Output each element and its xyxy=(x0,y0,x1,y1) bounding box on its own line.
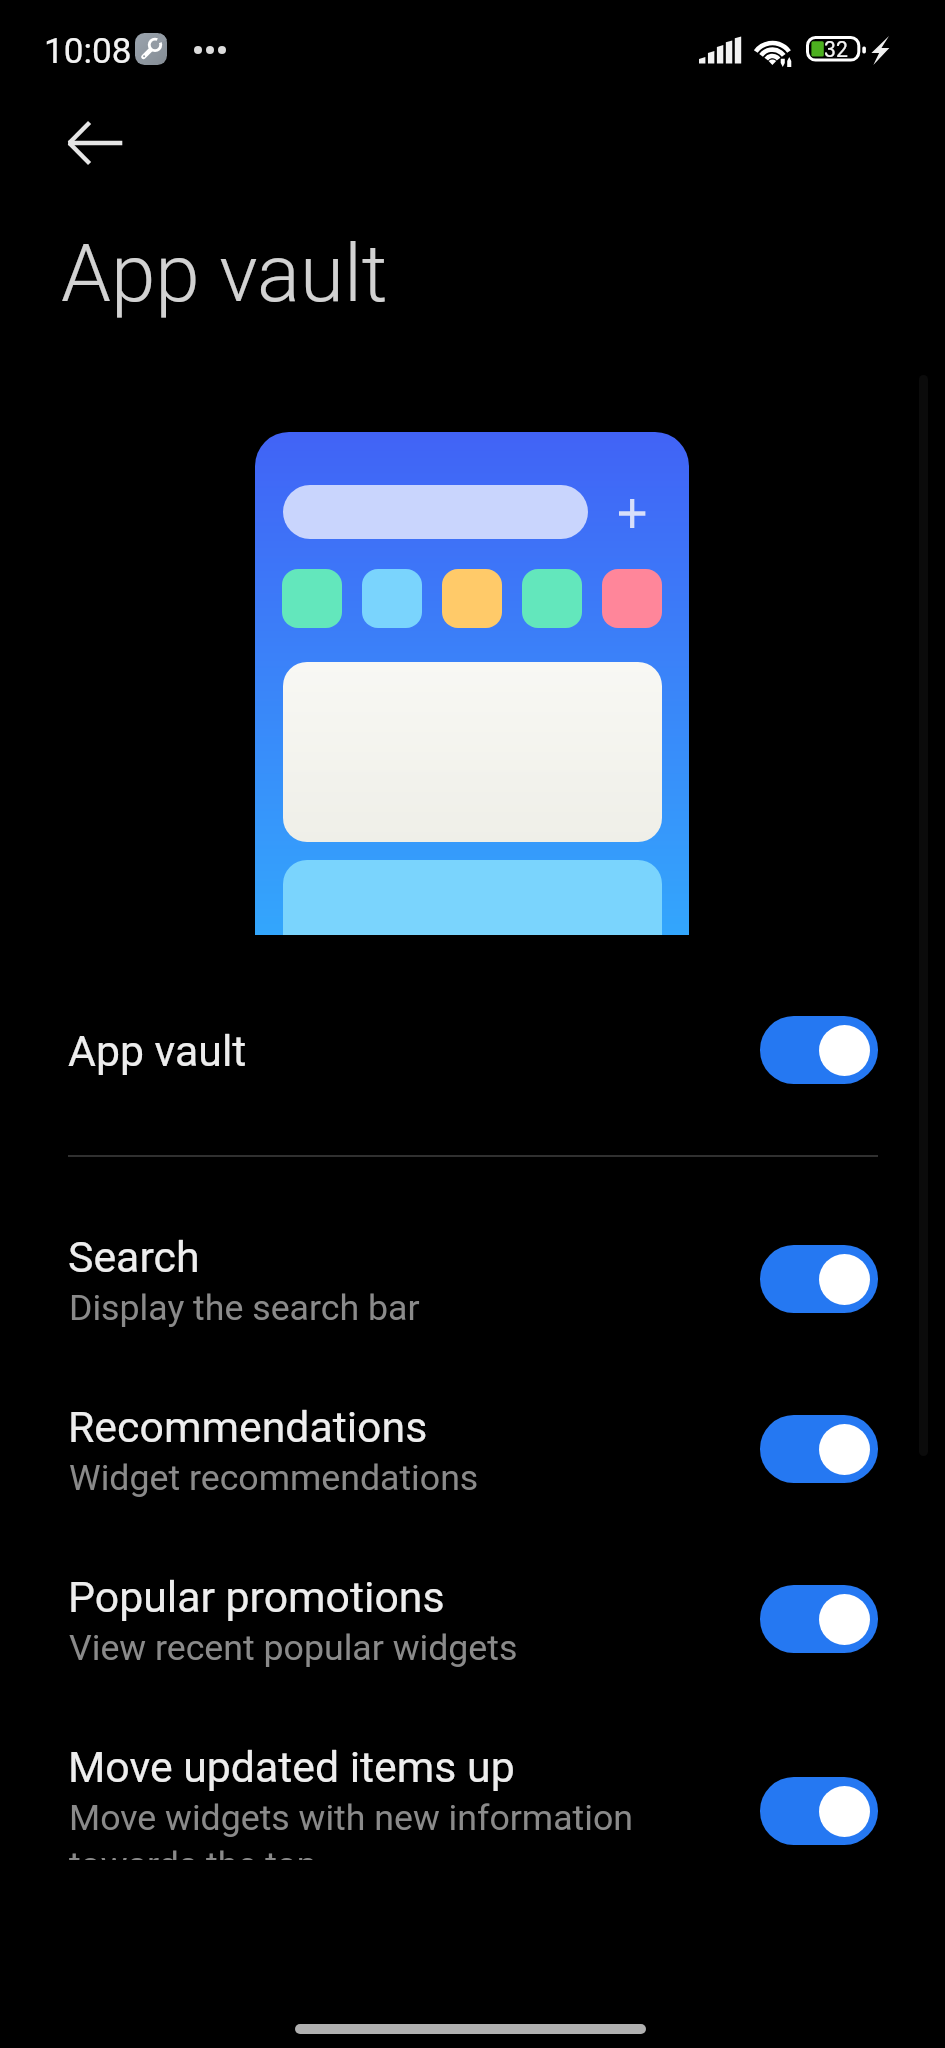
button[interactable]: Search xyxy=(0,1220,945,1380)
staticText: App vault xyxy=(68,1026,247,1076)
staticText: Move widgets with new information toward… xyxy=(69,1797,633,1860)
button[interactable]: App vault xyxy=(0,1014,945,1124)
staticText: Recommendations xyxy=(68,1402,428,1452)
staticText: Display the search bar xyxy=(69,1287,420,1329)
button[interactable]: Back xyxy=(56,104,134,182)
button[interactable]: Popular promotions toggle, on xyxy=(760,1585,878,1653)
staticText: Widget recommendations xyxy=(69,1457,479,1499)
staticText: Search xyxy=(68,1232,200,1282)
button[interactable]: Recommendations toggle, on xyxy=(760,1415,878,1483)
button[interactable]: App vault toggle, on xyxy=(760,1016,878,1084)
button[interactable]: Move updated items up toggle, on xyxy=(760,1777,878,1845)
button[interactable]: Popular promotions xyxy=(0,1560,945,1720)
staticText: Popular promotions xyxy=(68,1572,445,1622)
staticText: 32 xyxy=(824,37,848,62)
staticText: 10:08 xyxy=(44,30,132,71)
button[interactable]: Recommendations xyxy=(0,1390,945,1550)
button[interactable]: Search toggle, on xyxy=(760,1245,878,1313)
staticText: View recent popular widgets xyxy=(69,1627,518,1669)
staticText: App vault xyxy=(61,227,388,321)
button[interactable]: Move updated items up xyxy=(0,1730,945,1860)
staticText: Move updated items up xyxy=(68,1742,515,1792)
